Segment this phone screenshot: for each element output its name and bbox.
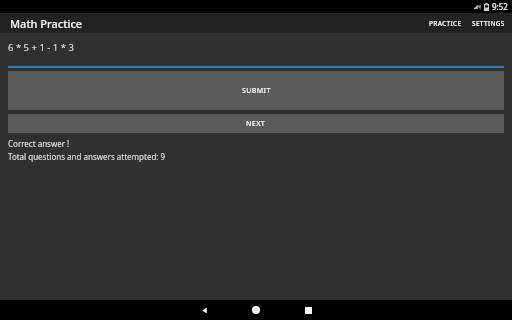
button[interactable]: SUBMIT xyxy=(8,71,504,110)
staticText: SETTINGS xyxy=(472,19,505,28)
button[interactable]: PRACTICE xyxy=(424,15,467,32)
staticText: Math Practice xyxy=(10,16,83,31)
staticText: SUBMIT xyxy=(242,86,271,96)
staticText: PRACTICE xyxy=(429,19,462,28)
button[interactable]: NEXT xyxy=(8,114,504,133)
staticText: Correct answer ! xyxy=(8,138,70,149)
button[interactable]: Home xyxy=(230,300,282,320)
staticText: 9:52 xyxy=(492,1,508,12)
button[interactable]: SETTINGS xyxy=(467,15,512,32)
staticText: Total questions and answers attempted: 9 xyxy=(8,151,166,162)
button[interactable]: Recent apps xyxy=(282,300,334,320)
staticText: 6 * 5 + 1 - 1 * 3 xyxy=(8,41,74,54)
button[interactable]: Back xyxy=(178,300,230,320)
staticText: NEXT xyxy=(246,119,266,129)
